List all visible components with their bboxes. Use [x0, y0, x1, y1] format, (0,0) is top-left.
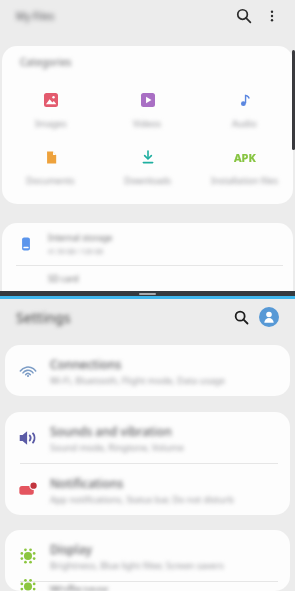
- button[interactable]: SD card: [2, 266, 293, 291]
- staticText: Images: [35, 117, 67, 129]
- button[interactable]: Search settings: [227, 303, 255, 331]
- button[interactable]: Search: [229, 1, 259, 31]
- staticText: SD card: [48, 273, 79, 285]
- button[interactable]: Account: [259, 307, 279, 327]
- button[interactable]: Sounds and vibration: [5, 412, 290, 463]
- staticText: My Files: [16, 9, 55, 23]
- button[interactable]: Audio: [196, 85, 293, 132]
- button[interactable]: APK: [196, 142, 293, 189]
- staticText: Categories: [20, 55, 72, 69]
- staticText: App notifications, Status bar, Do not di…: [50, 493, 234, 505]
- staticText: Settings: [16, 308, 71, 327]
- staticText: Wi-Fi, Bluetooth, Flight mode, Data usag…: [50, 374, 225, 386]
- button[interactable]: Notifications: [5, 464, 290, 515]
- staticText: Display: [50, 541, 92, 557]
- button[interactable]: Documents: [2, 142, 99, 189]
- staticText: Audio: [232, 117, 257, 129]
- button[interactable]: Wallpaper: [5, 582, 290, 591]
- staticText: Notifications: [50, 475, 124, 491]
- staticText: Downloads: [124, 174, 172, 186]
- button[interactable]: Downloads: [99, 142, 196, 189]
- staticText: Videos: [133, 117, 162, 129]
- button[interactable]: More options: [259, 3, 285, 29]
- button[interactable]: Images: [2, 85, 99, 132]
- staticText: Connections: [50, 356, 122, 372]
- staticText: Installation files: [211, 174, 278, 186]
- staticText: Sound mode, Ringtone, Volume: [50, 441, 184, 453]
- staticText: Documents: [26, 174, 75, 186]
- staticText: Internal storage: [48, 232, 113, 244]
- staticText: Brightness, Blue light filter, Screen sa…: [50, 559, 224, 571]
- button[interactable]: Internal storage: [2, 223, 293, 265]
- staticText: APK: [234, 150, 256, 165]
- staticText: 41.50 GB / 128 GB: [48, 247, 103, 256]
- button[interactable]: Videos: [99, 85, 196, 132]
- staticText: Wallpaper: [50, 582, 109, 591]
- staticText: Sounds and vibration: [50, 423, 172, 439]
- button[interactable]: Display: [5, 530, 290, 581]
- button[interactable]: Connections: [5, 345, 290, 396]
